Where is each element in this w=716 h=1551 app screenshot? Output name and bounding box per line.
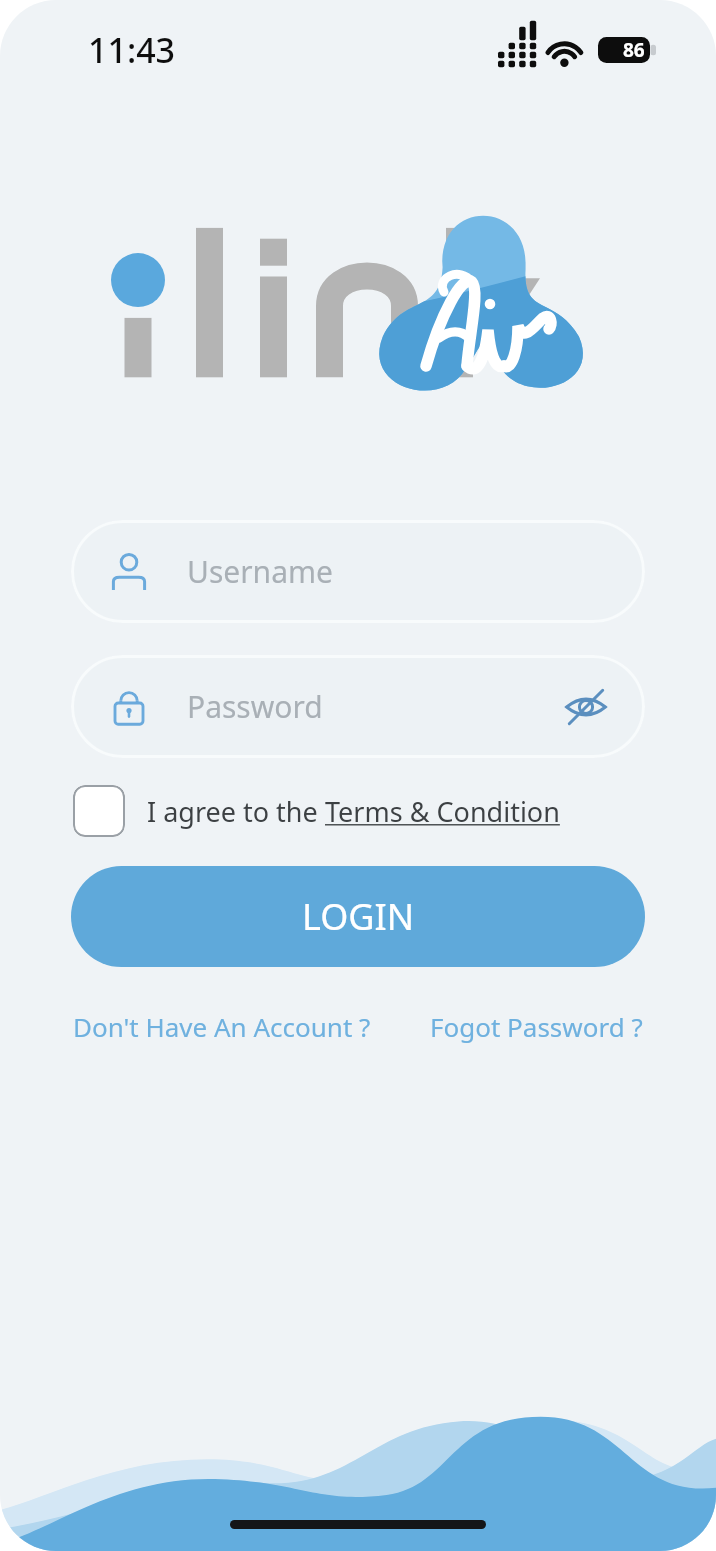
- button[interactable]: I agree to the terms checkbox: [73, 785, 125, 837]
- staticText: Don't Have An Account ?: [73, 1009, 371, 1044]
- staticText: 11:43: [88, 27, 176, 73]
- staticText: I agree to the: [147, 793, 325, 830]
- button[interactable]: Don't Have An Account ?: [73, 1009, 371, 1044]
- button[interactable]: Show password: [561, 682, 611, 732]
- staticText: LOGIN: [302, 892, 415, 941]
- button[interactable]: Fogot Password ?: [430, 1009, 643, 1044]
- staticText: Fogot Password ?: [430, 1009, 643, 1044]
- staticText: Password: [187, 686, 323, 727]
- staticText: Terms & Condition: [325, 793, 560, 830]
- button[interactable]: Terms & Condition: [325, 793, 560, 830]
- staticText: 86: [623, 37, 645, 63]
- staticText: Username: [187, 551, 333, 592]
- button[interactable]: LOGIN: [71, 866, 645, 967]
- button[interactable]: Username: [71, 520, 645, 623]
- button[interactable]: Password: [71, 655, 645, 758]
